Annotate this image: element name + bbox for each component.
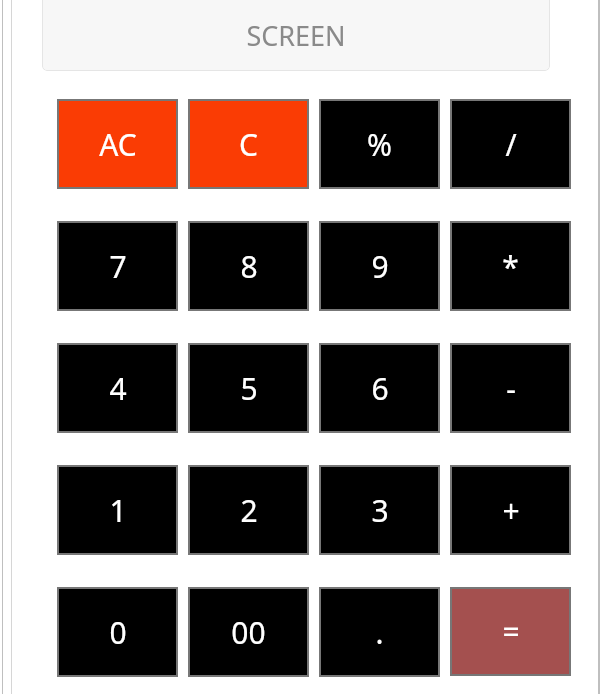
button[interactable]: = xyxy=(450,587,571,676)
staticText: 00 xyxy=(231,612,266,653)
staticText: + xyxy=(502,490,520,531)
staticText: 0 xyxy=(109,612,127,653)
staticText: 1 xyxy=(109,490,127,531)
button[interactable]: 7 xyxy=(57,221,178,311)
button[interactable]: 2 xyxy=(188,465,309,555)
staticText: * xyxy=(502,246,519,287)
staticText: SCREEN xyxy=(246,17,346,54)
button[interactable]: C xyxy=(188,99,309,189)
button[interactable]: + xyxy=(450,465,571,555)
button[interactable]: 4 xyxy=(57,343,178,433)
staticText: 6 xyxy=(371,368,389,409)
button[interactable]: 6 xyxy=(319,343,440,433)
button[interactable]: - xyxy=(450,343,571,433)
button[interactable]: 9 xyxy=(319,221,440,311)
button[interactable]: * xyxy=(450,221,571,311)
button[interactable]: AC xyxy=(57,99,178,189)
button[interactable]: 0 xyxy=(57,587,178,677)
button[interactable]: 3 xyxy=(319,465,440,555)
button[interactable]: 8 xyxy=(188,221,309,311)
button[interactable]: 1 xyxy=(57,465,178,555)
button[interactable]: 5 xyxy=(188,343,309,433)
staticText: % xyxy=(367,124,392,165)
staticText: . xyxy=(375,612,384,653)
staticText: 4 xyxy=(109,368,127,409)
button[interactable]: 00 xyxy=(188,587,309,677)
button[interactable]: / xyxy=(450,99,571,189)
staticText: 5 xyxy=(240,368,258,409)
staticText: 3 xyxy=(371,490,389,531)
staticText: 8 xyxy=(240,246,258,287)
button[interactable]: % xyxy=(319,99,440,189)
staticText: 2 xyxy=(240,490,258,531)
staticText: C xyxy=(239,124,258,165)
button[interactable]: SCREEN xyxy=(42,0,550,71)
staticText: = xyxy=(502,611,520,652)
staticText: AC xyxy=(99,124,137,165)
staticText: 9 xyxy=(371,246,389,287)
staticText: - xyxy=(506,368,516,409)
staticText: 7 xyxy=(109,246,127,287)
staticText: / xyxy=(505,124,517,165)
button[interactable]: . xyxy=(319,587,440,677)
